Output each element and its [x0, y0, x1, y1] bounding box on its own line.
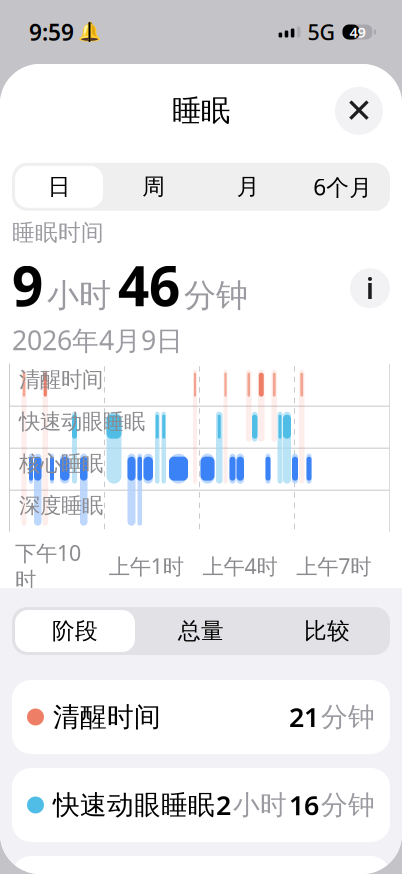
- button[interactable]: 核心睡眠: [12, 856, 390, 874]
- staticText: 月: [237, 173, 260, 201]
- staticText: 小时: [233, 789, 287, 821]
- staticText: 上午1时: [109, 552, 184, 580]
- staticText: 日: [48, 173, 71, 201]
- staticText: 16: [289, 787, 319, 823]
- button[interactable]: 比较: [264, 607, 390, 655]
- staticText: 49: [349, 22, 365, 42]
- staticText: 阶段: [52, 617, 98, 645]
- staticText: 🔔: [78, 21, 101, 43]
- staticText: 周: [142, 173, 165, 201]
- staticText: 小时: [47, 276, 111, 315]
- staticText: i: [366, 270, 374, 307]
- button[interactable]: 清醒时间: [12, 680, 390, 754]
- button[interactable]: 周: [106, 163, 201, 211]
- staticText: 46: [118, 249, 180, 321]
- staticText: 上午7时: [296, 552, 371, 580]
- staticText: 清醒时间: [19, 367, 103, 393]
- staticText: 分钟: [321, 789, 375, 821]
- staticText: 清醒时间: [53, 701, 161, 733]
- staticText: 快速动眼睡眠: [19, 409, 145, 435]
- button[interactable]: 关闭: [335, 87, 383, 135]
- staticText: 分钟: [321, 701, 375, 733]
- staticText: 深度睡眠: [19, 493, 103, 519]
- staticText: 分钟: [184, 276, 248, 315]
- staticText: ✕: [345, 92, 373, 130]
- staticText: 9: [12, 249, 43, 321]
- staticText: 6个月: [313, 172, 372, 202]
- button[interactable]: 月: [201, 163, 295, 211]
- button[interactable]: 快速动眼睡眠: [12, 768, 390, 842]
- staticText: 5G: [307, 18, 335, 46]
- staticText: 比较: [304, 617, 350, 645]
- staticText: 9:59: [29, 17, 74, 47]
- staticText: 睡眠时间: [12, 219, 104, 247]
- staticText: 2026年4月9日: [12, 322, 183, 358]
- button[interactable]: 总量: [138, 607, 264, 655]
- button[interactable]: 信息: [350, 268, 390, 308]
- staticText: 核心睡眠: [19, 451, 103, 477]
- button[interactable]: 阶段: [12, 607, 138, 655]
- button[interactable]: 6个月: [295, 163, 390, 211]
- button[interactable]: 日: [12, 163, 106, 211]
- staticText: 快速动眼睡眠: [53, 789, 215, 821]
- staticText: 睡眠: [172, 93, 230, 129]
- staticText: 21: [289, 699, 319, 735]
- staticText: 总量: [178, 617, 224, 645]
- staticText: 2: [216, 787, 231, 823]
- staticText: 上午4时: [202, 552, 277, 580]
- staticText: 下午10时: [15, 539, 81, 593]
